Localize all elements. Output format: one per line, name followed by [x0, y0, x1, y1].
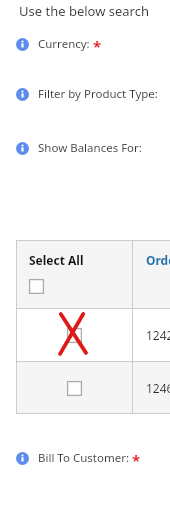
button[interactable]: Select row 12420: [16, 309, 170, 361]
staticText: Bill To Customer:: [38, 450, 129, 466]
button[interactable]: Order: [146, 252, 170, 268]
staticText: Select All: [29, 252, 84, 268]
button[interactable]: Select row 12466: [67, 381, 82, 396]
staticText: 12420: [146, 327, 170, 343]
button[interactable]: Info: Show Balances For: [16, 140, 170, 156]
button[interactable]: Info: Currency: [16, 34, 170, 54]
button[interactable]: Info: Bill To Customer: [16, 448, 170, 468]
staticText: Show Balances For:: [38, 140, 142, 156]
other: Info: Bill To Customer: [16, 452, 29, 465]
other: Info: Filter by Product Type: [16, 88, 29, 101]
staticText: Order: [146, 252, 170, 268]
other: Info: Show Balances For: [16, 142, 29, 155]
button[interactable]: Info: Filter by Product Type: [16, 86, 170, 102]
button[interactable]: Select row 12466: [16, 362, 170, 414]
staticText: *: [132, 450, 141, 470]
button[interactable]: Select All: [16, 240, 132, 308]
button[interactable]: Select all rows: [29, 279, 44, 294]
other: Info: Currency: [16, 38, 29, 51]
staticText: Filter by Product Type:: [38, 86, 158, 102]
button[interactable]: Select row 12420: [67, 328, 82, 343]
staticText: Currency:: [38, 36, 90, 52]
staticText: *: [93, 36, 102, 56]
staticText: Use the below search: [19, 2, 150, 20]
staticText: 12466: [146, 380, 170, 396]
